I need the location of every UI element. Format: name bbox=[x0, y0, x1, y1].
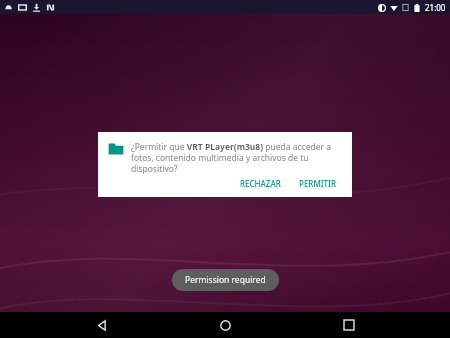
button[interactable]: RECHAZAR bbox=[234, 174, 287, 193]
staticText: ¿Permitir que VRT PLayer(m3u8) pueda acc… bbox=[131, 141, 342, 174]
button[interactable]: PERMITIR bbox=[293, 174, 342, 193]
staticText: 21:00 bbox=[425, 2, 446, 13]
staticText: RECHAZAR bbox=[240, 178, 281, 189]
button[interactable]: Home bbox=[203, 312, 247, 338]
staticText: Permission required bbox=[185, 274, 266, 286]
button[interactable]: Recent apps bbox=[327, 312, 371, 338]
button[interactable]: Back bbox=[80, 312, 124, 338]
staticText: PERMITIR bbox=[299, 178, 336, 189]
